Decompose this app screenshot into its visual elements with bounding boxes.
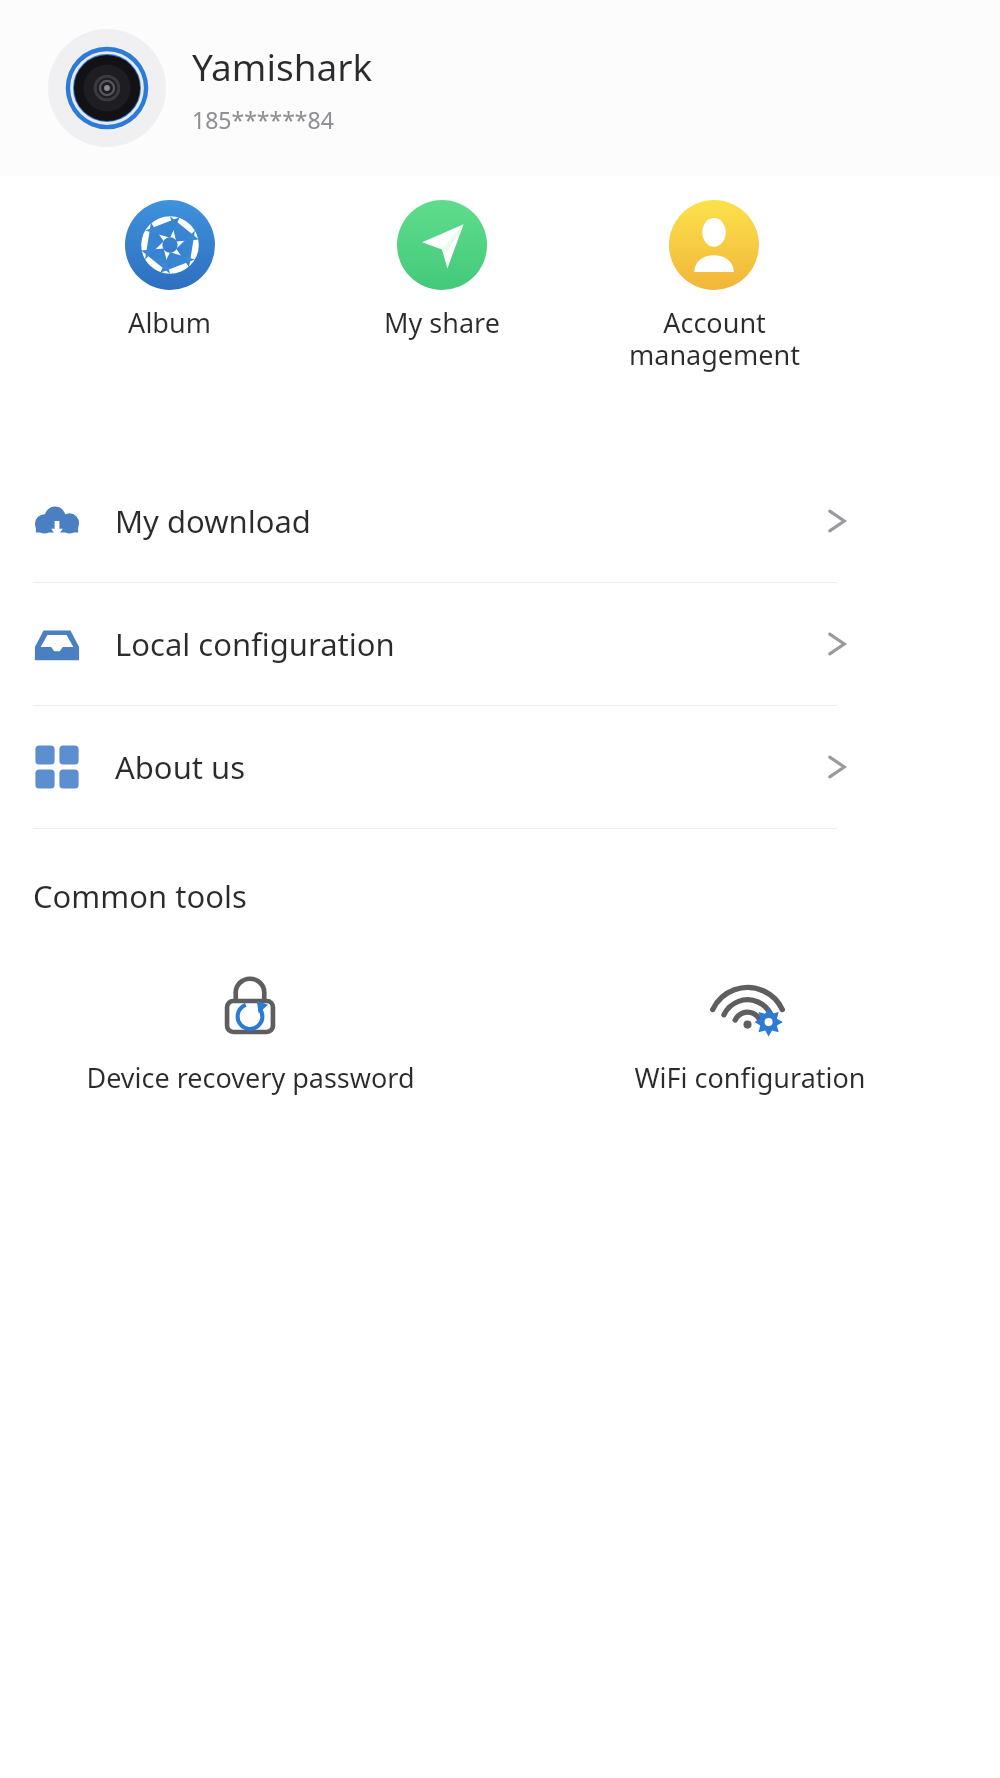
staticText: Yamishark xyxy=(192,41,373,91)
button[interactable]: My share xyxy=(306,176,578,378)
staticText: 185******84 xyxy=(192,104,334,135)
staticText: My share xyxy=(384,304,500,341)
button[interactable]: My download xyxy=(0,460,1000,582)
button[interactable]: Yamishark xyxy=(0,0,1000,176)
button[interactable]: Album xyxy=(33,176,306,378)
staticText: Device recovery password xyxy=(86,1059,415,1096)
staticText: Local configuration xyxy=(115,623,395,665)
staticText: My download xyxy=(115,500,311,542)
button[interactable]: Account management xyxy=(578,176,850,378)
staticText: Account management xyxy=(629,304,800,373)
button[interactable]: WiFi configuration xyxy=(500,975,1000,1096)
button[interactable]: About us xyxy=(0,706,1000,828)
staticText: Common tools xyxy=(33,875,247,917)
button[interactable]: Local configuration xyxy=(0,583,1000,705)
staticText: About us xyxy=(115,746,246,788)
staticText: Album xyxy=(128,304,211,341)
button[interactable]: Device recovery password xyxy=(0,975,500,1096)
staticText: WiFi configuration xyxy=(634,1059,866,1096)
